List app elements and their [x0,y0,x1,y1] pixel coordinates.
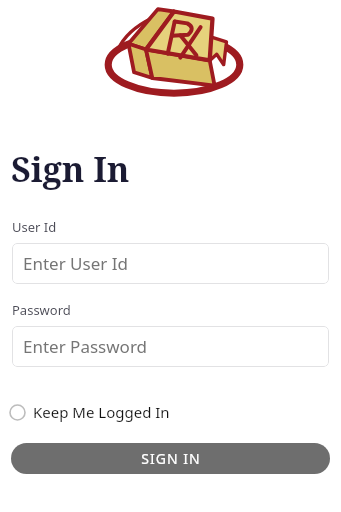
staticText: User Id [12,218,57,236]
staticText: Enter User Id [23,252,128,275]
button[interactable]: SIGN IN [11,443,330,474]
staticText: Enter Password [23,335,148,358]
staticText: Sign In [11,146,130,192]
button[interactable]: Keep Me Logged In [0,397,341,427]
staticText: Keep Me Logged In [33,402,170,422]
staticText: SIGN IN [141,449,201,468]
button[interactable]: Enter User Id [12,243,329,284]
staticText: Password [12,301,71,319]
button[interactable]: Enter Password [12,326,329,367]
